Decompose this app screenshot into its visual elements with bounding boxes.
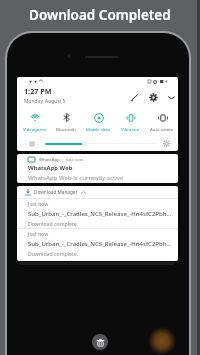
button[interactable]: Brightness: [45, 141, 157, 146]
staticText: Download Manager: [34, 189, 78, 195]
staticText: Videogame: [23, 126, 46, 132]
button[interactable]: Just now: [17, 199, 178, 228]
staticText: 1:27 PM: [24, 86, 52, 96]
button[interactable]: WhatsApp: [17, 154, 178, 183]
button[interactable]: Vibration: [114, 112, 146, 132]
staticText: Auto-rotate: [150, 126, 174, 132]
staticText: Monday, August 5: [24, 98, 66, 105]
button[interactable]: Just now: [17, 229, 178, 261]
button[interactable]: Download Manager: [25, 186, 178, 198]
staticText: Download Completed: [29, 6, 171, 24]
staticText: Just now: [28, 231, 49, 238]
staticText: Sub_Urban_-_Cradles_NCS_Release_-Hn4sfC2…: [28, 210, 172, 218]
staticText: Just now: [66, 156, 84, 162]
staticText: WhatsApp Web is currently active: [28, 173, 124, 181]
staticText: Download complete.: [28, 250, 79, 257]
staticText: Mobile data: [86, 126, 110, 132]
button[interactable]: Expand: [165, 91, 178, 104]
staticText: WhatsApp: [39, 156, 60, 162]
staticText: ·: [62, 156, 64, 162]
staticText: Just now: [28, 201, 49, 208]
button[interactable]: Edit tiles: [128, 91, 141, 104]
button[interactable]: Auto-rotate: [146, 112, 178, 132]
button[interactable]: Settings: [147, 91, 160, 104]
button[interactable]: Mobile data: [82, 112, 114, 132]
button[interactable]: Bluetooth: [50, 112, 82, 132]
staticText: WhatsApp Web: [28, 164, 73, 172]
button[interactable]: Clear all notifications: [92, 334, 108, 350]
staticText: Vibration: [121, 126, 140, 132]
staticText: Download complete.: [28, 220, 79, 227]
staticText: Sub_Urban_-_Cradles_NCS_Release_-Hn4sfC2…: [28, 240, 172, 248]
staticText: Bluetooth: [56, 126, 76, 132]
button[interactable]: Videogame: [19, 112, 50, 132]
